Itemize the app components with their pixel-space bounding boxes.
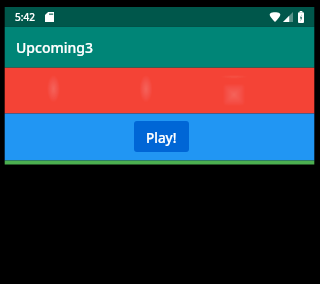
button[interactable]: Item 2 bbox=[108, 68, 211, 114]
other: Battery bbox=[298, 11, 304, 23]
staticText: Play! bbox=[146, 129, 177, 147]
staticText: Upcoming3 bbox=[16, 38, 93, 57]
other: Wifi bbox=[269, 12, 281, 22]
other: Signal strength bbox=[283, 12, 293, 22]
button[interactable]: Item 3 bbox=[211, 68, 314, 114]
button[interactable]: Play! bbox=[134, 121, 189, 152]
staticText: 5:42 bbox=[15, 10, 35, 24]
other: Notification bbox=[45, 12, 54, 22]
button[interactable]: Upcoming3 bbox=[5, 27, 315, 68]
button[interactable]: Item 1 bbox=[5, 68, 108, 114]
